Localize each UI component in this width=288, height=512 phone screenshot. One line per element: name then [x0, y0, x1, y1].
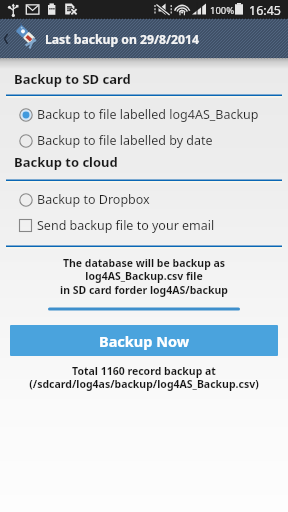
staticText: Backup Now: [99, 331, 190, 351]
button[interactable]: Backup to file labelled by date: [0, 128, 288, 153]
staticText: log4AS_Backup.csv file: [0, 269, 288, 283]
staticText: in SD card forder log4AS/backup: [0, 283, 288, 297]
staticText: Last backup on 29/8/2014: [45, 31, 199, 48]
staticText: Backup to Dropbox: [37, 191, 150, 208]
button[interactable]: Backup Now: [10, 325, 278, 356]
staticText: Backup to file labelled by date: [37, 132, 213, 149]
button[interactable]: Send backup file to your email: [0, 213, 288, 238]
button[interactable]: Navigate up: [0, 19, 44, 58]
staticText: Total 1160 record backup at: [0, 364, 288, 378]
staticText: Backup to SD card: [14, 70, 131, 88]
staticText: Send backup file to your email: [37, 217, 215, 234]
staticText: Backup to file labelled log4AS_Backup: [37, 106, 259, 123]
staticText: (/sdcard/log4as/backup/log4AS_Backup.csv…: [0, 377, 288, 391]
staticText: 100%: [210, 4, 235, 17]
staticText: Backup to cloud: [14, 153, 118, 171]
staticText: The database will be backup as: [0, 256, 288, 270]
button[interactable]: Backup to file labelled log4AS_Backup: [0, 102, 288, 127]
staticText: 16:45: [249, 2, 281, 19]
button[interactable]: Backup to Dropbox: [0, 187, 288, 212]
